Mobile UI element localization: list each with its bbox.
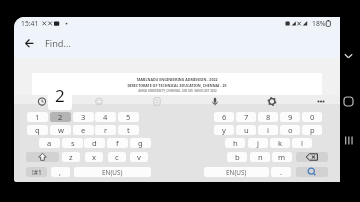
button[interactable]: Settings	[263, 93, 281, 110]
button[interactable]: Back	[18, 32, 41, 54]
button[interactable]: Stickers	[148, 93, 166, 110]
button[interactable]: 9	[280, 112, 300, 122]
staticText: 18%	[312, 19, 326, 28]
button[interactable]: a	[39, 138, 60, 148]
staticText: r	[104, 125, 108, 135]
staticText: i	[267, 125, 269, 135]
button[interactable]: m	[272, 152, 292, 162]
staticText: ANNA UNIVERSITY, CHENNAI - 600 025 RANK …	[138, 89, 217, 93]
button[interactable]: Voice input	[206, 93, 224, 110]
button[interactable]: q	[27, 125, 48, 135]
staticText: v	[137, 152, 141, 162]
button[interactable]: Space	[74, 167, 151, 177]
staticText: x	[92, 152, 97, 162]
staticText: !#1	[32, 168, 42, 177]
staticText: .	[280, 167, 283, 177]
staticText: EN(US)	[226, 168, 247, 177]
staticText: n	[258, 152, 263, 162]
staticText: s	[71, 138, 75, 148]
staticText: f	[116, 138, 119, 148]
button[interactable]: l	[292, 138, 312, 148]
button[interactable]: s	[62, 138, 83, 148]
button[interactable]: d	[84, 138, 105, 148]
staticText: 1	[35, 112, 40, 122]
staticText: j	[257, 138, 259, 148]
button[interactable]: 5	[118, 112, 139, 122]
staticText: 8	[266, 112, 271, 122]
button[interactable]: More options	[312, 93, 330, 110]
staticText: d	[92, 138, 97, 148]
button[interactable]: Recently used	[33, 93, 51, 110]
button[interactable]: r	[95, 125, 116, 135]
button[interactable]: f	[107, 138, 128, 148]
button[interactable]: p	[302, 125, 322, 135]
staticText: 4	[103, 112, 108, 122]
button[interactable]: c	[108, 152, 126, 162]
staticText: 7	[244, 112, 249, 122]
button[interactable]: Home	[340, 93, 357, 110]
staticText: w	[58, 125, 64, 135]
button[interactable]: 2	[50, 112, 71, 122]
staticText: 2	[58, 112, 63, 122]
staticText: m	[278, 152, 286, 162]
button[interactable]: 0	[302, 112, 322, 122]
staticText: l	[301, 138, 303, 148]
staticText: 3	[81, 112, 86, 122]
button[interactable]: y	[214, 125, 234, 135]
button[interactable]: Backspace	[296, 152, 328, 162]
staticText: a	[47, 138, 52, 148]
staticText: q	[35, 125, 40, 135]
button[interactable]: Emoji	[90, 93, 108, 110]
button[interactable]: k	[270, 138, 290, 148]
button[interactable]: 7	[236, 112, 256, 122]
button[interactable]: h	[225, 138, 245, 148]
staticText: 6	[222, 112, 227, 122]
staticText: g	[138, 138, 143, 148]
staticText: u	[244, 125, 249, 135]
button[interactable]: 4	[95, 112, 116, 122]
staticText: ,	[59, 167, 62, 177]
button[interactable]: t	[118, 125, 139, 135]
button[interactable]: Back	[340, 48, 357, 65]
button[interactable]: x	[85, 152, 103, 162]
staticText: o	[288, 125, 293, 135]
staticText: e	[81, 125, 86, 135]
button[interactable]: e	[73, 125, 94, 135]
button[interactable]: Recent apps	[340, 132, 357, 149]
button[interactable]: Find...	[44, 32, 284, 54]
staticText: 2	[55, 84, 65, 107]
button[interactable]: i	[258, 125, 278, 135]
button[interactable]: 3	[73, 112, 94, 122]
staticText: Find...	[45, 37, 71, 50]
staticText: 9	[288, 112, 293, 122]
button[interactable]: Space	[204, 167, 269, 177]
button[interactable]: o	[280, 125, 300, 135]
staticText: z	[69, 152, 73, 162]
staticText: DIRECTORATE OF TECHNICAL EDUCATION, CHEN…	[127, 83, 227, 88]
button[interactable]: .	[271, 167, 291, 177]
button[interactable]: 1	[27, 112, 48, 122]
staticText: k	[278, 138, 283, 148]
button[interactable]: n	[250, 152, 270, 162]
button[interactable]: 6	[214, 112, 234, 122]
button[interactable]: g	[130, 138, 151, 148]
button[interactable]: v	[130, 152, 148, 162]
button[interactable]: Symbols	[26, 167, 47, 177]
staticText: 15:41	[21, 19, 39, 28]
button[interactable]: w	[50, 125, 71, 135]
staticText: b	[235, 152, 240, 162]
staticText: y	[222, 125, 226, 135]
staticText: EN(US)	[102, 168, 123, 177]
button[interactable]: Search	[296, 167, 328, 177]
staticText: 5	[126, 112, 131, 122]
button[interactable]: Shift	[26, 152, 59, 162]
staticText: t	[127, 125, 130, 135]
button[interactable]: u	[236, 125, 256, 135]
button[interactable]: ,	[51, 167, 70, 177]
staticText: h	[233, 138, 238, 148]
staticText: c	[115, 152, 119, 162]
button[interactable]: b	[227, 152, 247, 162]
button[interactable]: j	[248, 138, 268, 148]
button[interactable]: z	[62, 152, 80, 162]
button[interactable]: 8	[258, 112, 278, 122]
